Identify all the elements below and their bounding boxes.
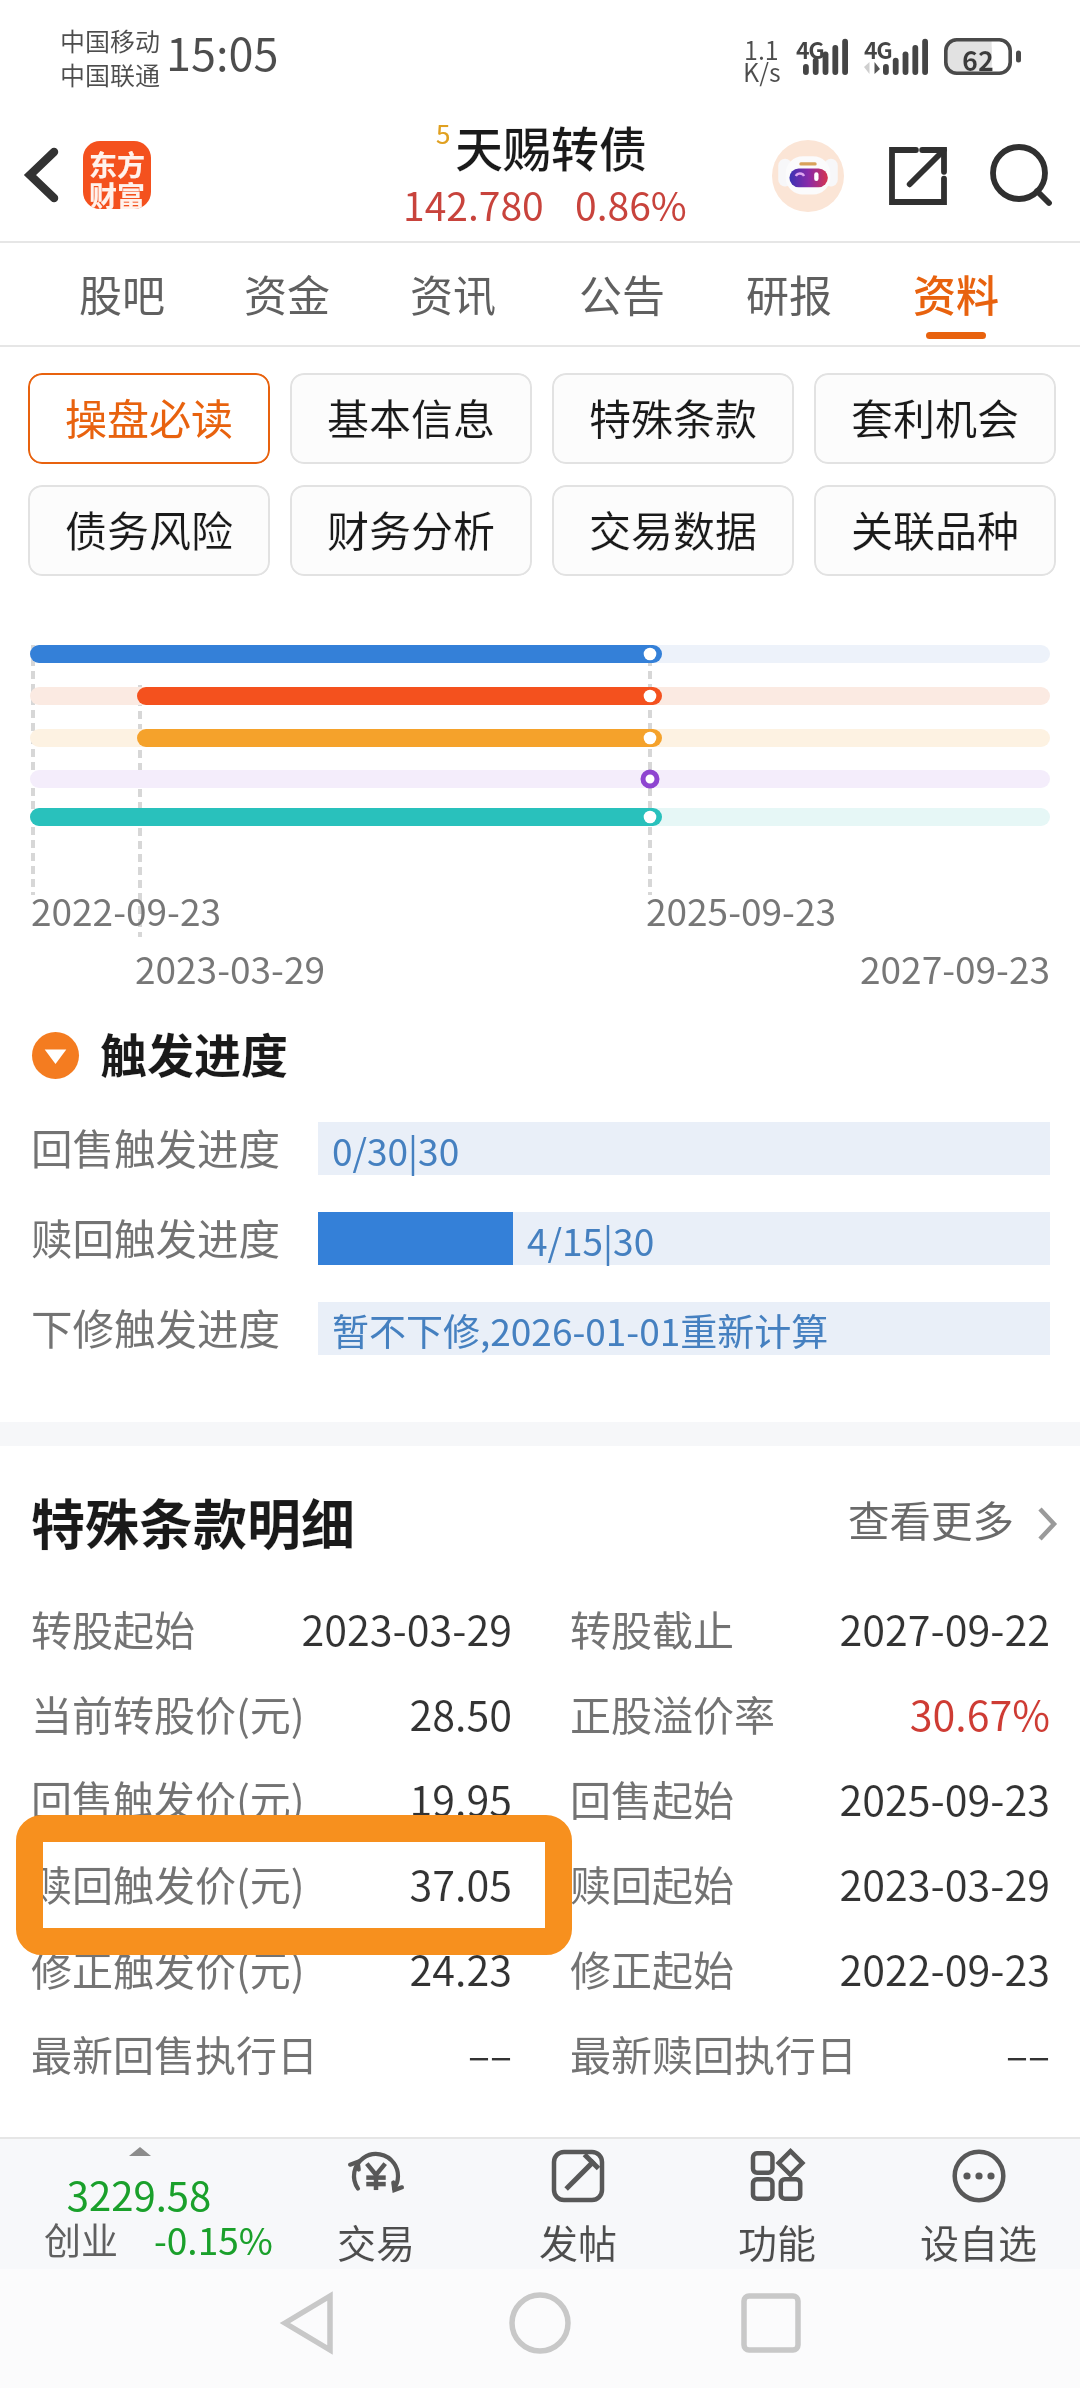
staticText: 债务风险 — [65, 498, 234, 559]
button[interactable]: Share — [866, 131, 966, 219]
staticText: 基本信息 — [327, 386, 496, 447]
button[interactable]: East Money — [83, 141, 151, 209]
staticText: 4/15|30 — [527, 1213, 655, 1266]
staticText: 2025-09-23 — [646, 883, 836, 937]
staticText: 2027-09-22 — [790, 1598, 1050, 1657]
staticText: -0.15% — [154, 2212, 273, 2266]
staticText: 操盘必读 — [65, 386, 234, 447]
staticText: 最新赎回执行日 — [570, 2023, 857, 2082]
staticText: 37.05 — [250, 1853, 512, 1912]
button[interactable]: 特殊条款 — [552, 373, 794, 464]
staticText: 关联品种 — [851, 498, 1020, 559]
staticText: 套利机会 — [851, 386, 1020, 447]
staticText: 0.86% — [575, 176, 687, 232]
staticText: K/s — [743, 53, 781, 89]
staticText: 最新回售执行日 — [31, 2023, 318, 2082]
button[interactable]: 交易 — [281, 2149, 471, 2269]
staticText: 资讯 — [410, 262, 496, 324]
button[interactable]: 发帖 — [483, 2149, 673, 2269]
staticText: 修正触发价(元) — [31, 1938, 305, 1997]
button[interactable]: Recents — [701, 2269, 841, 2379]
staticText: 正股溢价率 — [570, 1683, 775, 1742]
staticText: 28.50 — [250, 1683, 512, 1742]
button[interactable]: 财务分析 — [290, 485, 532, 576]
button[interactable]: 债务风险 — [28, 485, 270, 576]
staticText: 下修触发进度 — [31, 1297, 281, 1357]
staticText: 19.95 — [250, 1768, 512, 1827]
button[interactable]: 资金 — [209, 258, 365, 350]
staticText: 2025-09-23 — [790, 1768, 1050, 1827]
staticText: 功能 — [738, 2213, 817, 2269]
staticText: 赎回起始 — [570, 1853, 734, 1912]
staticText: 创业 — [44, 2212, 118, 2266]
staticText: 资金 — [244, 262, 330, 324]
staticText: 研报 — [746, 262, 832, 324]
button[interactable]: Search — [972, 131, 1072, 219]
staticText: 交易数据 — [589, 498, 758, 559]
button[interactable]: 设自选 — [884, 2149, 1074, 2269]
button[interactable]: 资讯 — [375, 258, 531, 350]
staticText: 62 — [944, 40, 1012, 79]
staticText: –– — [250, 2023, 512, 2082]
staticText: 4G — [864, 32, 892, 65]
staticText: 3229.58 — [2, 2165, 276, 2223]
staticText: 交易 — [337, 2213, 416, 2269]
staticText: 142.780 — [403, 176, 544, 232]
button[interactable]: 功能 — [682, 2149, 872, 2269]
staticText: 2023-03-29 — [250, 1598, 512, 1657]
button[interactable]: 操盘必读 — [28, 373, 270, 464]
staticText: 2023-03-29 — [135, 941, 325, 995]
staticText: 赎回触发价(元) — [31, 1853, 305, 1912]
staticText: 15:05 — [166, 19, 279, 84]
staticText: 当前转股价(元) — [31, 1683, 305, 1742]
staticText: 回售触发价(元) — [31, 1768, 305, 1827]
staticText: 30.67% — [790, 1683, 1050, 1742]
button[interactable]: 套利机会 — [814, 373, 1056, 464]
staticText: 查看更多 — [848, 1489, 1015, 1549]
staticText: 设自选 — [920, 2213, 1038, 2269]
button[interactable]: Assistant — [772, 140, 844, 212]
button[interactable]: Back — [0, 131, 86, 219]
button[interactable]: 关联品种 — [814, 485, 1056, 576]
staticText: 财务分析 — [327, 498, 496, 559]
staticText: 4G — [796, 32, 824, 65]
staticText: 中国移动 — [60, 22, 161, 58]
staticText: 资料 — [913, 262, 999, 324]
staticText: 中国联通 — [60, 56, 161, 92]
button[interactable]: 查看更多 — [848, 1486, 1057, 1552]
staticText: 发帖 — [539, 2213, 618, 2269]
button[interactable]: Back — [237, 2269, 377, 2379]
staticText: 触发进度 — [100, 1018, 288, 1086]
button[interactable]: 交易数据 — [552, 485, 794, 576]
button[interactable]: 公告 — [544, 258, 700, 350]
staticText: 转股截止 — [570, 1598, 734, 1657]
staticText: 回售起始 — [570, 1768, 734, 1827]
button[interactable]: 基本信息 — [290, 373, 532, 464]
staticText: 0/30|30 — [332, 1123, 460, 1176]
button[interactable]: 资料 — [878, 258, 1034, 350]
staticText: 转股起始 — [31, 1598, 195, 1657]
staticText: 2023-03-29 — [790, 1853, 1050, 1912]
staticText: 特殊条款明细 — [31, 1482, 355, 1560]
staticText: –– — [790, 2023, 1050, 2082]
staticText: 2027-09-23 — [0, 941, 1050, 995]
staticText: 暂不下修,2026-01-01重新计算 — [332, 1303, 829, 1356]
staticText: 公告 — [579, 262, 665, 324]
staticText: 赎回触发进度 — [31, 1207, 281, 1267]
button[interactable]: 股吧 — [44, 258, 200, 350]
staticText: 天赐转债 — [455, 111, 648, 181]
staticText: 财富 — [83, 175, 151, 209]
staticText: 修正起始 — [570, 1938, 734, 1997]
button[interactable]: Home — [470, 2269, 610, 2379]
staticText: 股吧 — [79, 262, 165, 324]
staticText: 特殊条款 — [589, 386, 758, 447]
staticText: 2022-09-23 — [790, 1938, 1050, 1997]
staticText: 东方 — [83, 144, 151, 185]
staticText: 2022-09-23 — [31, 883, 221, 937]
staticText: 5 — [436, 114, 451, 152]
staticText: 回售触发进度 — [31, 1117, 281, 1177]
staticText: 24.23 — [250, 1938, 512, 1997]
button[interactable]: 研报 — [711, 258, 867, 350]
staticText: 1.1 — [744, 31, 779, 67]
